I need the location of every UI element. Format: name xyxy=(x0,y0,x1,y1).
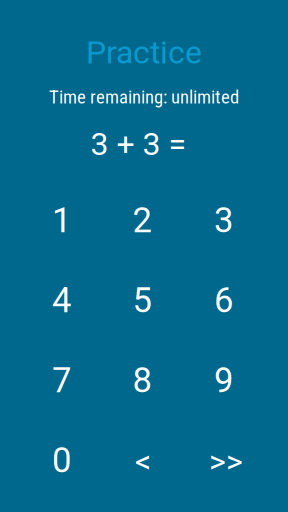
staticText: 8 xyxy=(132,360,151,401)
staticText: 2 xyxy=(132,200,151,241)
staticText: 4 xyxy=(52,280,71,321)
button[interactable]: 8 xyxy=(101,340,183,420)
button[interactable]: 2 xyxy=(101,180,183,260)
staticText: 6 xyxy=(214,280,233,321)
button[interactable]: 6 xyxy=(182,260,264,340)
button[interactable]: 1 xyxy=(20,180,102,260)
staticText: 5 xyxy=(132,280,151,321)
staticText: Practice xyxy=(86,34,202,71)
button[interactable]: Submit answer xyxy=(185,421,267,501)
button[interactable]: 7 xyxy=(20,340,102,420)
button[interactable]: 3 xyxy=(182,180,264,260)
button[interactable]: 5 xyxy=(101,260,183,340)
staticText: 3 + 3 = xyxy=(90,125,194,163)
staticText: 1 xyxy=(52,200,71,241)
button[interactable]: 9 xyxy=(182,340,264,420)
button[interactable]: Backspace xyxy=(102,421,184,501)
staticText: < xyxy=(135,443,151,480)
staticText: 7 xyxy=(52,360,71,401)
staticText: 9 xyxy=(214,360,233,401)
staticText: 3 xyxy=(214,200,233,241)
staticText: 0 xyxy=(52,440,71,481)
staticText: >> xyxy=(209,443,243,480)
staticText: Time remaining: unlimited xyxy=(49,86,239,108)
button[interactable]: 4 xyxy=(20,260,102,340)
button[interactable]: 0 xyxy=(20,420,102,500)
